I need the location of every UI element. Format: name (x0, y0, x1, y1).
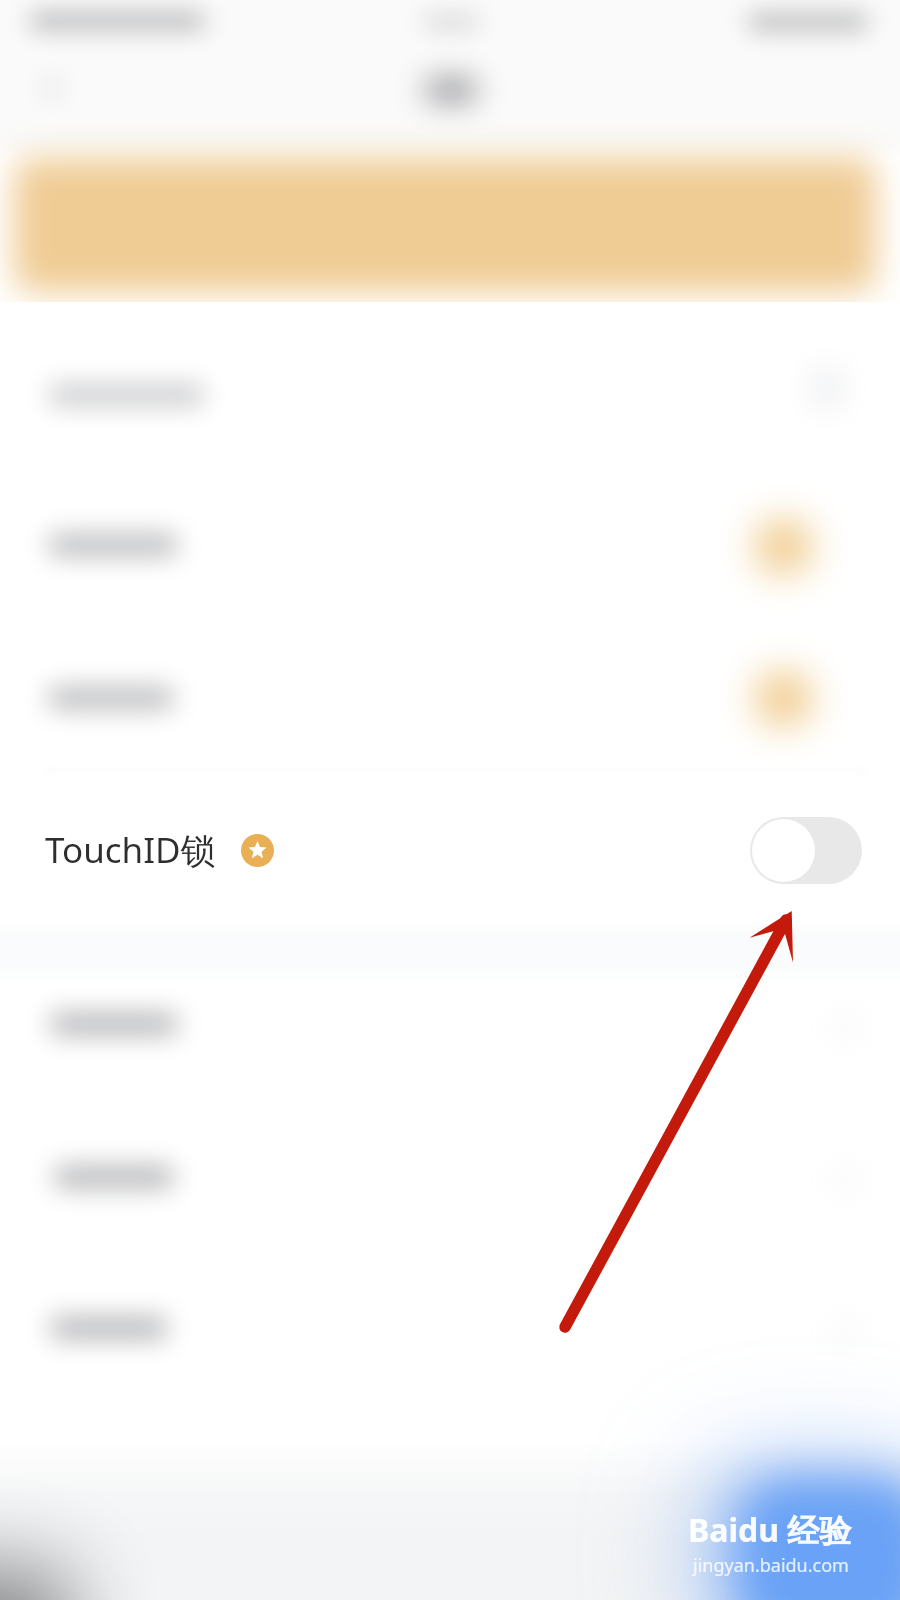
button[interactable]: Settings item (0, 472, 900, 624)
button[interactable]: TouchID lock, off (750, 817, 862, 884)
button[interactable]: Settings item (0, 624, 900, 776)
button[interactable]: Settings item (0, 1280, 900, 1432)
button[interactable]: Settings item (0, 320, 900, 472)
button[interactable]: TouchID锁 (0, 776, 900, 924)
button[interactable]: Settings item (0, 976, 900, 1128)
button[interactable]: Promotion banner (22, 160, 870, 290)
staticText: jingyan.baidu.com (693, 1553, 849, 1578)
other: Premium feature (241, 834, 274, 867)
staticText: TouchID锁 (45, 826, 216, 874)
staticText: Baidu 经验 (688, 1508, 852, 1552)
button[interactable]: Settings item (0, 1128, 900, 1280)
